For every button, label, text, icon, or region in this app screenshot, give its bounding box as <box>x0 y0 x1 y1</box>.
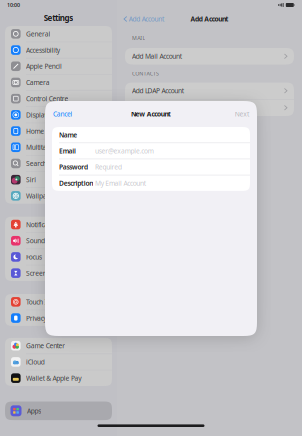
staticText: Home Screen & App Library <box>26 127 107 135</box>
button[interactable]: Next <box>235 107 249 121</box>
staticText: 10:00 <box>7 1 20 9</box>
staticText: New Account <box>131 110 171 118</box>
staticText: Screen Time <box>26 269 63 278</box>
button[interactable]: Notifications <box>5 217 112 232</box>
staticText: General <box>26 29 50 38</box>
staticText: Notifications <box>26 220 62 229</box>
staticText: Email <box>59 146 76 155</box>
staticText: Privacy & Security <box>26 314 77 322</box>
button[interactable]: Control Centre <box>5 91 112 106</box>
staticText: Game Center <box>26 341 65 350</box>
staticText: iCloud <box>26 357 45 366</box>
staticText: Display & Brightness <box>26 110 86 119</box>
button[interactable]: Game Center <box>5 338 112 354</box>
button[interactable]: Search <box>5 156 112 171</box>
staticText: Search <box>26 159 47 168</box>
button[interactable]: Home Screen & App Library <box>5 123 112 139</box>
staticText: CONTACTS <box>132 70 159 77</box>
button[interactable]: Accessibility <box>5 42 112 58</box>
button[interactable]: Screen Time <box>5 265 112 281</box>
button[interactable]: Focus <box>5 249 112 265</box>
staticText: Apple Pencil <box>26 62 62 71</box>
button[interactable]: Privacy & Security <box>5 310 112 326</box>
staticText: MAIL <box>132 34 145 42</box>
staticText: Multitasking & Gestures <box>26 143 96 152</box>
staticText: Accessibility <box>26 46 60 54</box>
button[interactable]: Camera <box>5 75 112 90</box>
button[interactable]: Add Account <box>124 12 164 26</box>
staticText: Sounds <box>26 236 48 245</box>
staticText: Settings <box>44 13 73 23</box>
staticText: My Email Account <box>95 179 146 188</box>
button[interactable]: Add LDAP Account <box>125 82 294 99</box>
button[interactable]: Wallet & Apple Pay <box>5 370 112 386</box>
staticText: Siri <box>26 175 36 184</box>
staticText: Next <box>235 110 249 118</box>
staticText: Cancel <box>53 110 73 118</box>
button[interactable]: General <box>5 26 112 42</box>
staticText: Control Centre <box>26 94 68 103</box>
button[interactable]: Display & Brightness <box>5 107 112 123</box>
button[interactable]: Touch ID & Passcode <box>5 294 112 310</box>
button[interactable]: Cancel <box>53 107 73 121</box>
staticText: Focus <box>26 252 42 261</box>
staticText: Touch ID & Passcode <box>26 297 86 306</box>
staticText: Add Account <box>129 15 164 23</box>
staticText: Name <box>59 130 77 139</box>
button[interactable]: Wallpaper <box>5 188 112 204</box>
staticText: Apps <box>27 406 41 415</box>
staticText: Password <box>59 163 88 171</box>
staticText: user@example.com <box>95 146 154 155</box>
button[interactable]: Siri <box>5 172 112 187</box>
button[interactable]: iCloud <box>5 354 112 370</box>
staticText: Add LDAP Account <box>132 86 184 95</box>
button[interactable]: Apps <box>0 401 117 420</box>
staticText: Wallpaper <box>26 191 57 200</box>
button[interactable]: Multitasking & Gestures <box>5 139 112 155</box>
button[interactable]: Add CardDAV Account <box>125 99 294 116</box>
staticText: Description <box>59 179 93 188</box>
button[interactable]: Apple Pencil <box>5 58 112 74</box>
button[interactable]: Sounds <box>5 233 112 249</box>
staticText: Add Mail Account <box>132 52 182 61</box>
staticText: Required <box>95 163 122 171</box>
button[interactable]: Add Mail Account <box>125 48 294 64</box>
staticText: Camera <box>26 78 50 87</box>
staticText: Wallet & Apple Pay <box>26 374 81 383</box>
staticText: Add Account <box>190 15 229 23</box>
